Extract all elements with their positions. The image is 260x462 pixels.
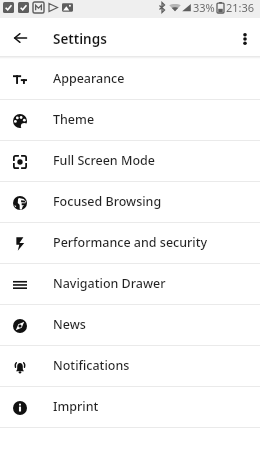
staticText: Navigation Drawer bbox=[53, 275, 166, 292]
button[interactable]: News bbox=[0, 305, 260, 346]
button[interactable]: Notifications bbox=[0, 346, 260, 387]
staticText: Theme bbox=[53, 111, 95, 128]
button[interactable]: Performance and security bbox=[0, 223, 260, 264]
button[interactable]: More options bbox=[229, 18, 260, 59]
button[interactable]: Back bbox=[0, 18, 41, 59]
staticText: Imprint bbox=[53, 398, 99, 415]
staticText: Appearance bbox=[53, 70, 125, 87]
button[interactable]: Full Screen Mode bbox=[0, 141, 260, 182]
staticText: Performance and security bbox=[53, 234, 208, 251]
staticText: Settings bbox=[53, 30, 107, 48]
staticText: 21:36 bbox=[226, 0, 255, 15]
button[interactable]: Imprint bbox=[0, 387, 260, 428]
staticText: Notifications bbox=[53, 357, 130, 374]
staticText: Focused Browsing bbox=[53, 193, 162, 210]
button[interactable]: Appearance bbox=[0, 59, 260, 100]
button[interactable]: Navigation Drawer bbox=[0, 264, 260, 305]
staticText: News bbox=[53, 316, 86, 333]
staticText: 33% bbox=[193, 0, 215, 15]
staticText: Full Screen Mode bbox=[53, 152, 155, 169]
button[interactable]: Theme bbox=[0, 100, 260, 141]
button[interactable]: Focused Browsing bbox=[0, 182, 260, 223]
